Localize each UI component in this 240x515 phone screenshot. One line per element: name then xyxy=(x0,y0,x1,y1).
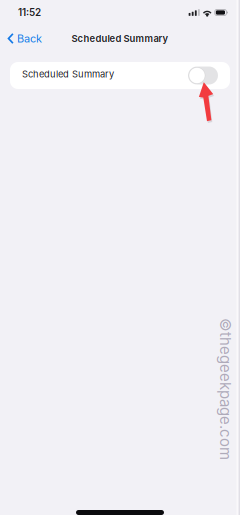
staticText: Scheduled Summary xyxy=(71,33,168,44)
button[interactable]: Scheduled Summary xyxy=(10,62,230,89)
button[interactable]: Back xyxy=(0,27,50,49)
staticText: Scheduled Summary xyxy=(22,68,114,80)
staticText: 11:52 xyxy=(18,6,41,18)
staticText: ©thegeekpage.com xyxy=(154,380,240,398)
staticText: Back xyxy=(17,32,42,45)
